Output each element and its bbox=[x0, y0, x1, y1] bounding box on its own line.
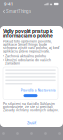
staticText: Pokud toto oprávnení povolíte, aplikace … bbox=[3, 40, 59, 53]
staticText: Zachová aktuálnu polohu bbox=[5, 54, 46, 58]
button[interactable]: Back bbox=[0, 130, 6, 136]
button[interactable]: Zrušiť bbox=[3, 120, 60, 126]
staticText: Zrušiť bbox=[27, 121, 36, 125]
staticText: Vidly povolit prístup k informáciám o po… bbox=[3, 29, 53, 38]
staticText: 9:41 bbox=[4, 2, 13, 6]
button[interactable]: Tabs bbox=[56, 130, 62, 136]
button[interactable]: Pravidlá a Nastavenia bbox=[5, 89, 56, 92]
button[interactable]: SmartThings bbox=[3, 8, 31, 15]
staticText: Umožní odoslanie do vašich zariadení bbox=[5, 58, 51, 65]
staticText: SmartThings bbox=[6, 9, 31, 14]
staticText: Pravidlá a Nastavenia bbox=[21, 89, 56, 92]
button[interactable]: Share bbox=[28, 130, 34, 136]
button[interactable]: Forward bbox=[14, 130, 20, 136]
button[interactable]: Bookmarks bbox=[42, 130, 48, 136]
button[interactable] bbox=[5, 94, 56, 97]
staticText: Po stlačení na tlačidlo Súhlasím potvrdz… bbox=[3, 102, 59, 112]
